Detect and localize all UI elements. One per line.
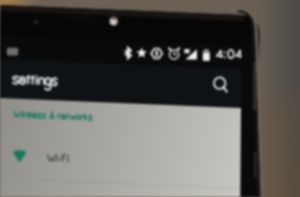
button[interactable] xyxy=(0,141,240,179)
button[interactable]: Search xyxy=(207,71,237,101)
